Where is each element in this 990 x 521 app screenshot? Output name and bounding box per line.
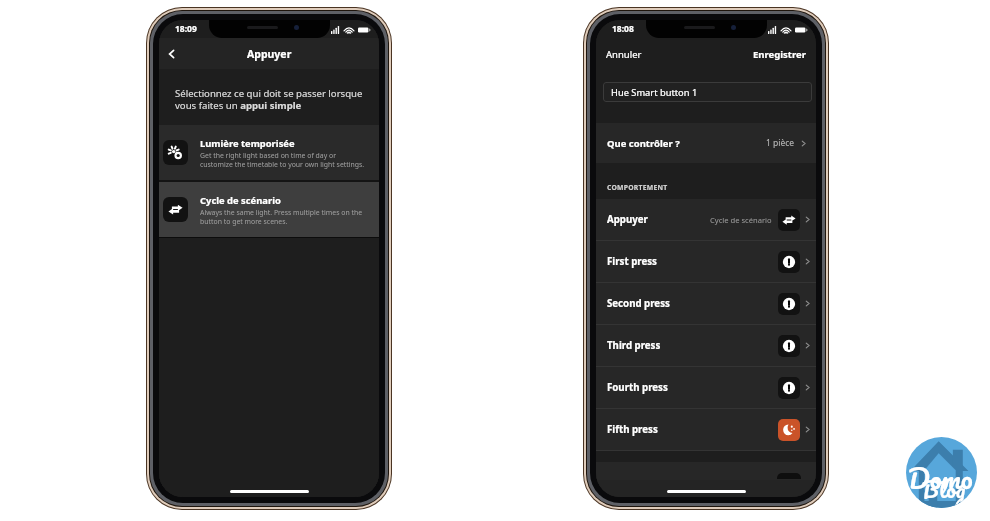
- button[interactable]: Hue Smart button 1: [603, 82, 812, 102]
- staticText: Always the same light. Press multiple ti…: [200, 208, 363, 226]
- staticText: COMPORTEMENT: [607, 183, 668, 192]
- staticText: Sélectionnez ce qui doit se passer lorsq…: [175, 87, 363, 112]
- button[interactable]: Second press: [596, 283, 816, 324]
- button[interactable]: Enregistrer: [747, 42, 816, 67]
- staticText: Hue Smart button 1: [611, 86, 698, 99]
- staticText: Lumière temporisée: [200, 137, 295, 150]
- staticText: Cycle de scénario: [710, 215, 772, 225]
- staticText: Fourth press: [607, 381, 668, 394]
- staticText: Domo: [908, 455, 973, 501]
- staticText: Second press: [607, 297, 670, 310]
- staticText: Que contrôler ?: [607, 137, 680, 150]
- button[interactable]: First press: [596, 241, 816, 282]
- button[interactable]: Lumière temporisée: [159, 125, 379, 180]
- staticText: Appuyer: [607, 213, 648, 226]
- staticText: Get the right light based on time of day…: [200, 151, 365, 169]
- staticText: Appuyer: [247, 47, 292, 61]
- staticText: 1 pièce: [766, 137, 795, 149]
- staticText: First press: [607, 255, 657, 268]
- button[interactable]: Third press: [596, 325, 816, 366]
- button[interactable]: Fourth press: [596, 367, 816, 408]
- button[interactable]: Back: [159, 38, 185, 69]
- button[interactable]: Fifth press: [596, 409, 816, 450]
- button[interactable]: Que contrôler ?: [596, 123, 816, 163]
- staticText: Fifth press: [607, 423, 658, 436]
- staticText: 18:09: [175, 23, 197, 35]
- staticText: Cycle de scénario: [200, 194, 281, 207]
- staticText: 18:08: [612, 23, 634, 35]
- button[interactable]: Annuler: [596, 42, 648, 67]
- button[interactable]: Cycle de scénario: [159, 182, 379, 237]
- staticText: Blog: [922, 471, 966, 508]
- staticText: Third press: [607, 339, 661, 352]
- button[interactable]: Appuyer: [596, 199, 816, 240]
